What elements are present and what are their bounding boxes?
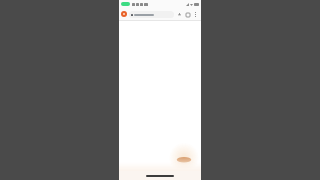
- button[interactable]: More options: [192, 11, 199, 18]
- button[interactable]: Switch tabs: [184, 11, 191, 18]
- button[interactable]: Home: [146, 175, 174, 177]
- button[interactable]: [129, 11, 174, 18]
- button[interactable]: Site icon: [121, 11, 127, 17]
- button[interactable]: Share: [176, 11, 183, 18]
